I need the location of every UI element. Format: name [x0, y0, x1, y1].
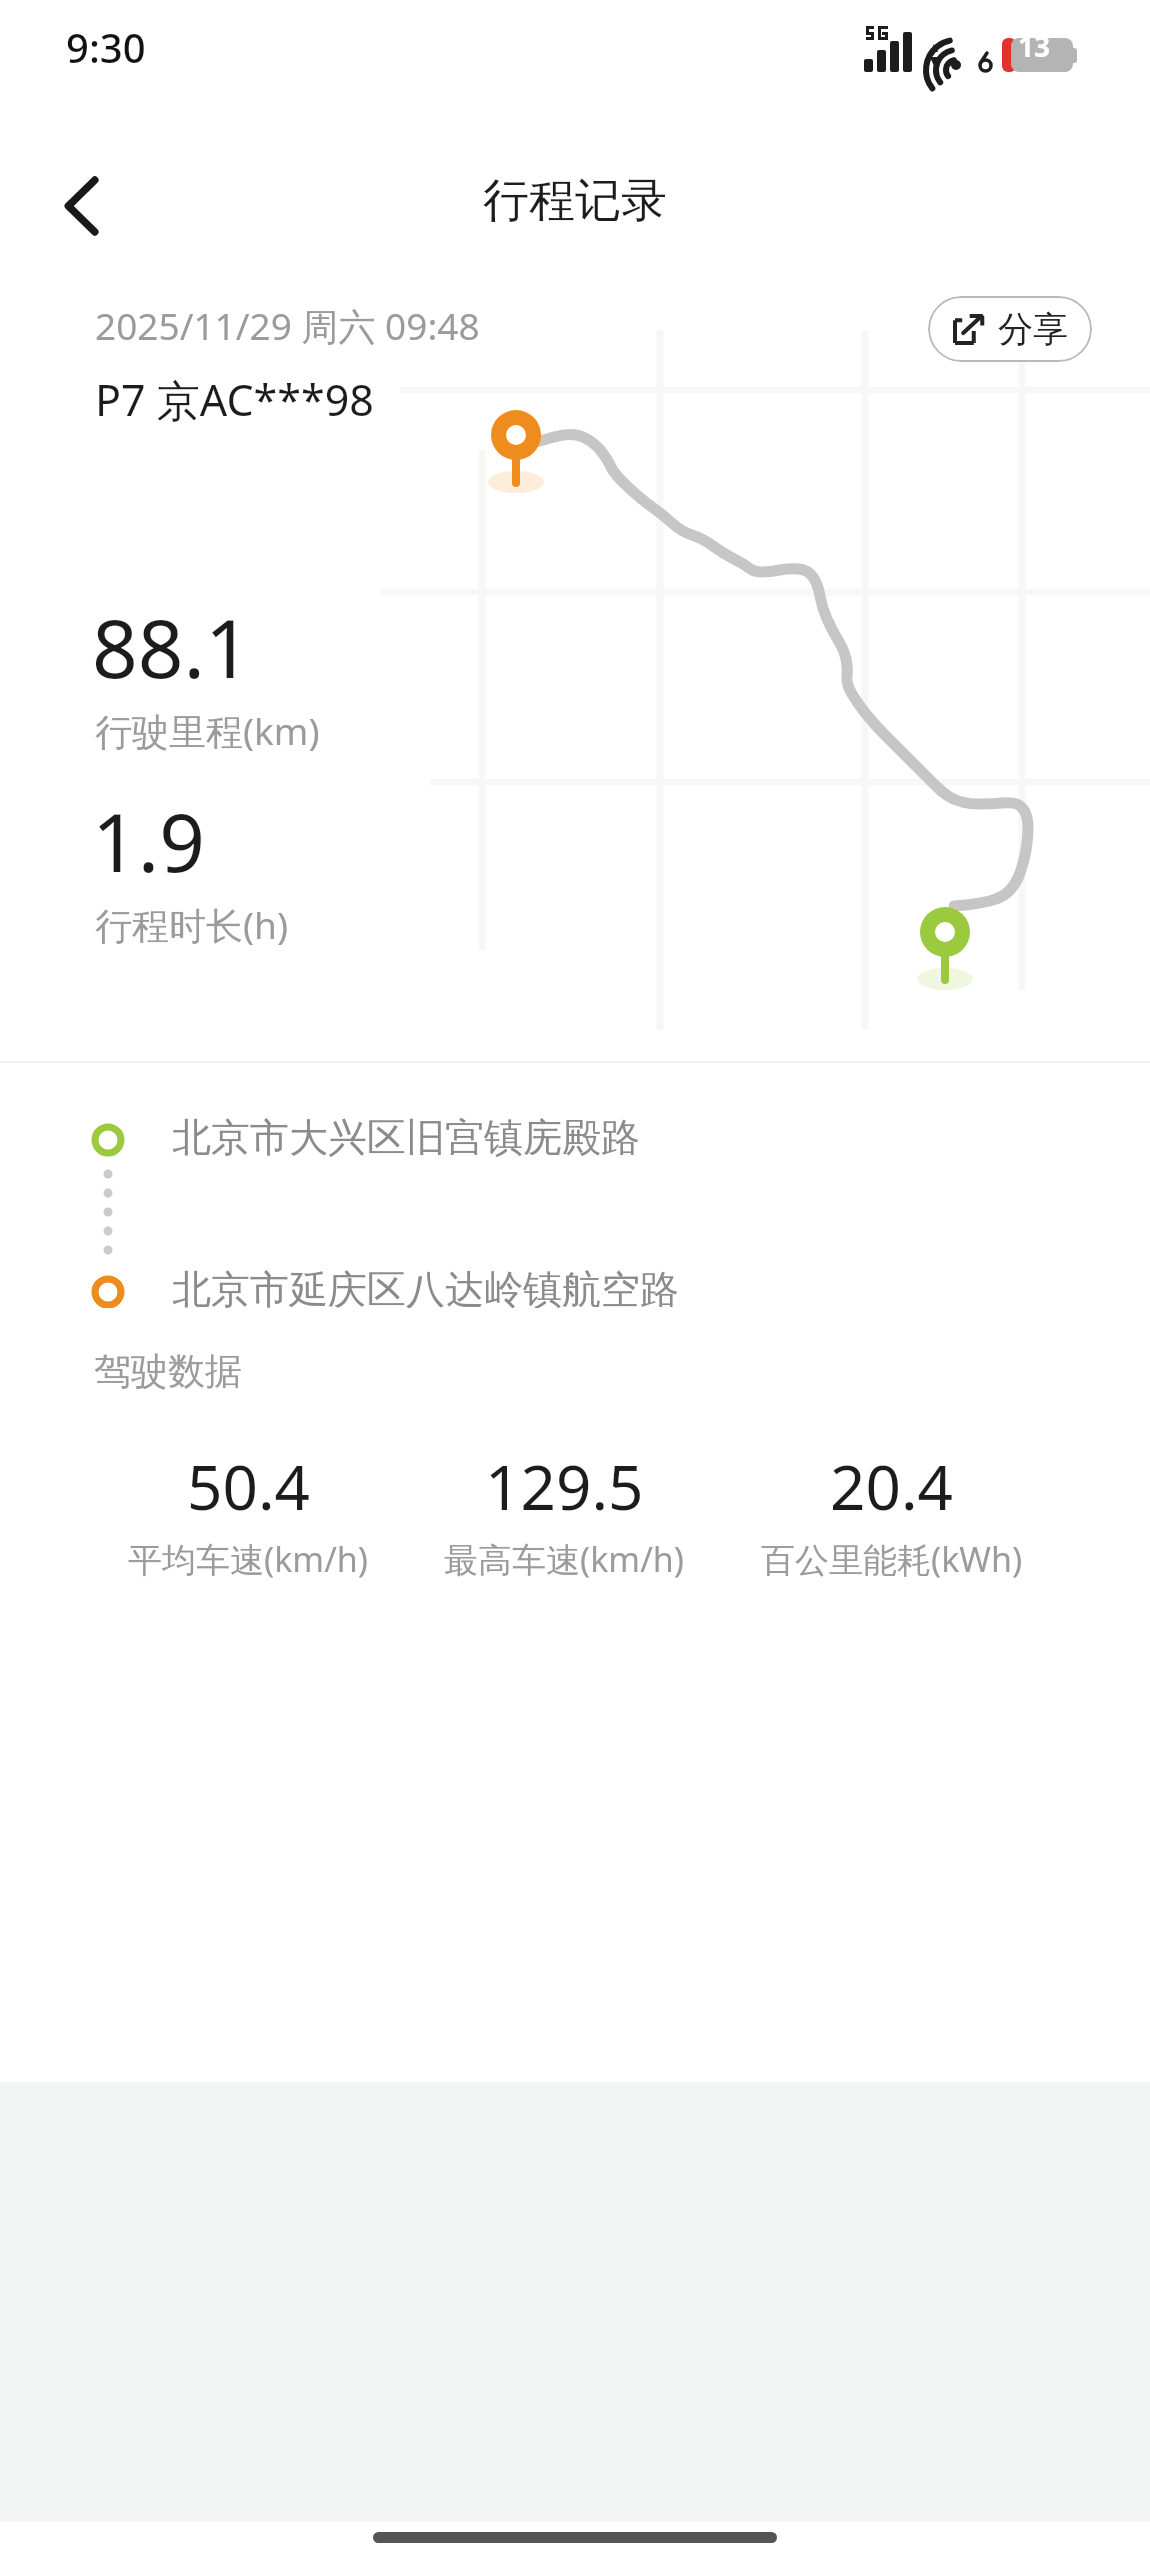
staticText: 行程时长(h) [95, 899, 289, 950]
staticText: 平均车速(km/h) [128, 1536, 369, 1582]
staticText: 行程记录 [0, 172, 1150, 230]
button[interactable]: 驾驶数据 [52, 1308, 1098, 1656]
staticText: 北京市大兴区旧宫镇庑殿路 [172, 1113, 640, 1162]
staticText: 13 [1018, 27, 1051, 65]
staticText: 88.1 [92, 592, 251, 701]
staticText: 20.4 [830, 1444, 954, 1528]
staticText: 9:30 [66, 20, 146, 74]
staticText: 50.4 [187, 1444, 311, 1528]
staticText: 分享 [998, 307, 1068, 351]
staticText: 129.5 [485, 1444, 644, 1528]
staticText: 驾驶数据 [94, 1348, 242, 1395]
staticText: 最高车速(km/h) [444, 1536, 685, 1582]
staticText: 行驶里程(km) [95, 705, 320, 756]
button[interactable]: 分享 [928, 296, 1092, 362]
staticText: 2025/11/29 周六 09:48 [95, 300, 480, 351]
button[interactable]: Back [30, 152, 138, 260]
staticText: P7 京AC***98 [95, 370, 374, 429]
staticText: 北京市延庆区八达岭镇航空路 [172, 1265, 679, 1314]
staticText: 百公里能耗(kWh) [761, 1536, 1023, 1582]
staticText: 1.9 [92, 786, 205, 895]
